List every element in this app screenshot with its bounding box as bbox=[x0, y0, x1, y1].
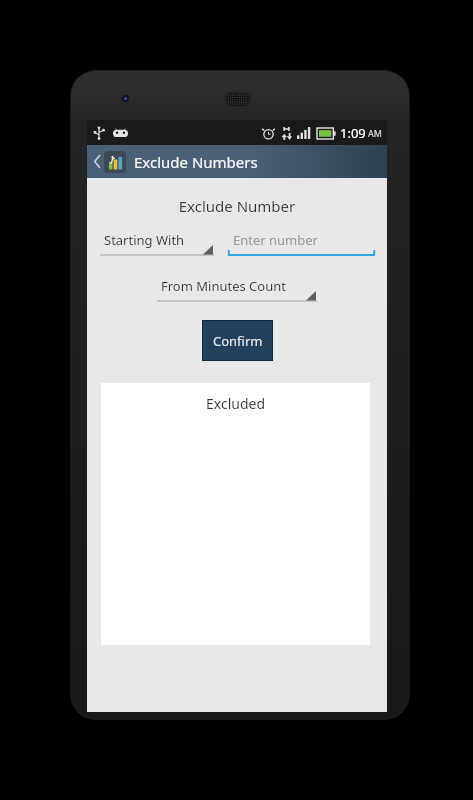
staticText: Enter number bbox=[233, 231, 318, 249]
button[interactable]: Excluded bbox=[101, 383, 370, 645]
button[interactable]: Confirm bbox=[203, 321, 272, 360]
button[interactable]: Enter number bbox=[228, 230, 375, 256]
staticText: Confirm bbox=[213, 332, 263, 350]
button[interactable]: Navigate up bbox=[90, 145, 104, 178]
button[interactable]: From Minutes Count bbox=[157, 276, 317, 302]
staticText: Exclude Numbers bbox=[134, 152, 258, 172]
button[interactable]: Starting With bbox=[100, 230, 214, 256]
staticText: Starting With bbox=[104, 231, 185, 249]
staticText: 1:09 bbox=[340, 124, 366, 142]
button[interactable]: App icon bbox=[104, 151, 126, 173]
staticText: From Minutes Count bbox=[161, 277, 286, 295]
staticText: Excluded bbox=[101, 394, 370, 413]
staticText: Exclude Number bbox=[87, 196, 387, 216]
staticText: AM bbox=[368, 127, 382, 139]
